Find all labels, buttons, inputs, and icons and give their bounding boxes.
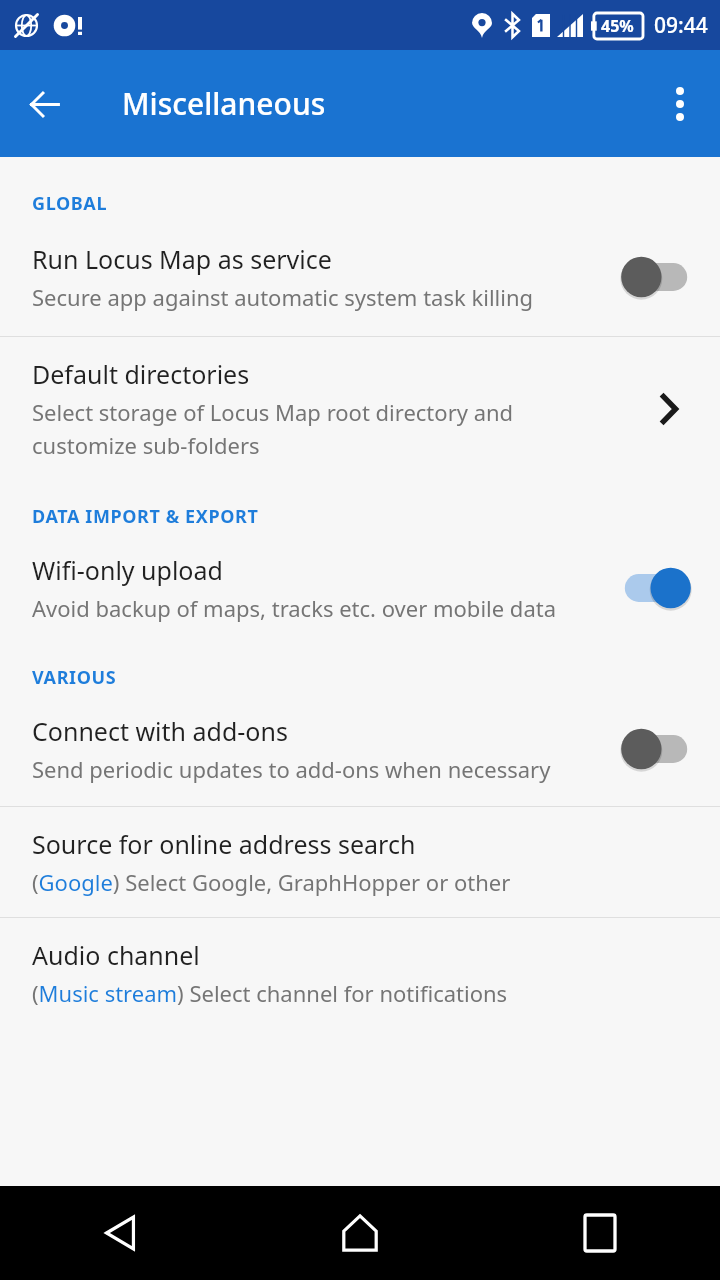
staticText: Wifi-only upload: [32, 553, 223, 587]
button[interactable]: Audio channel: [0, 918, 720, 1028]
button[interactable]: Back: [85, 1198, 155, 1268]
staticText: 09:44: [654, 11, 708, 40]
button[interactable]: Home: [325, 1198, 395, 1268]
staticText: DATA IMPORT & EXPORT: [32, 504, 259, 529]
button[interactable]: More options: [654, 78, 706, 130]
button[interactable]: Connect with add-ons: [0, 690, 720, 806]
button[interactable]: Open: [636, 377, 700, 441]
button[interactable]: Switch off: [612, 249, 700, 305]
button[interactable]: Wifi-only upload: [0, 529, 720, 645]
staticText: Source for online address search: [32, 827, 416, 861]
staticText: GLOBAL: [32, 191, 108, 216]
staticText: Secure app against automatic system task…: [32, 282, 534, 312]
staticText: Default directories: [32, 357, 250, 391]
staticText: Miscellaneous: [122, 83, 326, 124]
staticText: Avoid backup of maps, tracks etc. over m…: [32, 593, 557, 623]
staticText: Select storage of Locus Map root directo…: [32, 397, 622, 460]
staticText: 45%: [601, 15, 634, 37]
button[interactable]: Switch on: [612, 560, 700, 616]
staticText: Audio channel: [32, 938, 200, 972]
button[interactable]: Default directories: [0, 337, 720, 482]
button[interactable]: Switch off: [612, 721, 700, 777]
staticText: (Google) Select Google, GraphHopper or o…: [32, 867, 511, 897]
button[interactable]: Back: [18, 78, 70, 130]
staticText: Connect with add-ons: [32, 714, 288, 748]
button[interactable]: Source for online address search: [0, 807, 720, 917]
button[interactable]: Recents: [565, 1198, 635, 1268]
staticText: VARIOUS: [32, 665, 117, 690]
staticText: Run Locus Map as service: [32, 242, 332, 276]
staticText: (Music stream) Select channel for notifi…: [32, 978, 508, 1008]
button[interactable]: Run Locus Map as service: [0, 216, 720, 336]
staticText: Send periodic updates to add-ons when ne…: [32, 754, 551, 784]
